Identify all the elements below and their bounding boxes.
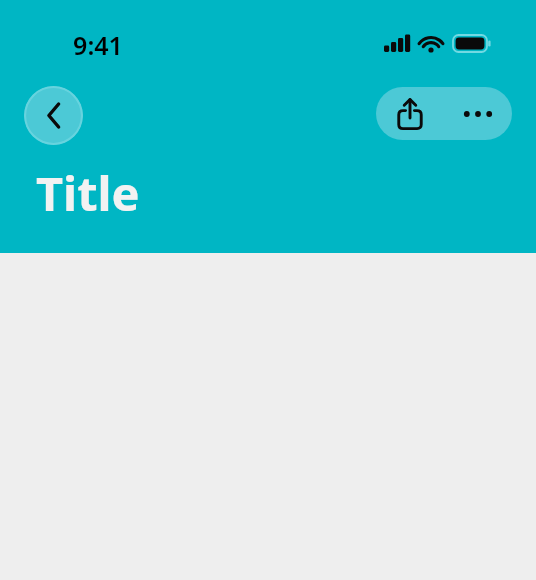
staticText: 9:41 xyxy=(53,28,143,62)
staticText: Title xyxy=(36,161,140,225)
button[interactable]: More options xyxy=(444,87,512,140)
button[interactable]: Share xyxy=(376,87,444,140)
button[interactable]: Back xyxy=(24,86,83,145)
